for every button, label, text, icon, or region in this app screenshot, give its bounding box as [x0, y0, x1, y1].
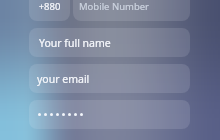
button[interactable]: Mobile Number	[73, 0, 190, 21]
staticText: Your full name	[39, 36, 111, 50]
button[interactable]: your email	[29, 64, 190, 93]
button[interactable]: Your full name	[29, 28, 190, 57]
staticText: +880	[29, 0, 70, 13]
button[interactable]: +880	[29, 0, 70, 21]
button[interactable]	[29, 100, 190, 129]
staticText: your email	[37, 72, 90, 86]
staticText: Mobile Number	[79, 0, 150, 13]
